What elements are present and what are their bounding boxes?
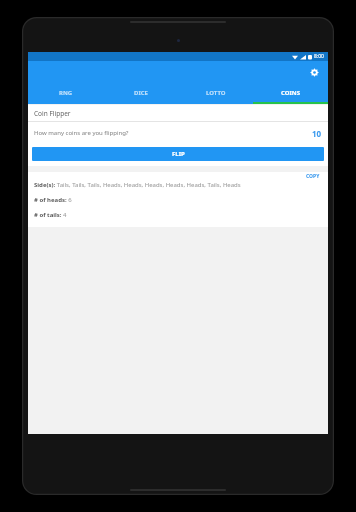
button[interactable]: Settings	[306, 64, 323, 81]
staticText: # of tails: 4	[34, 211, 67, 219]
staticText: Coin Flipper	[34, 109, 71, 118]
button[interactable]: RNG	[28, 84, 103, 102]
staticText: COINS	[281, 89, 300, 97]
staticText: COPY	[306, 173, 320, 180]
staticText: 10	[312, 128, 322, 139]
button[interactable]: DICE	[103, 84, 178, 102]
staticText: FLIP	[172, 150, 185, 158]
button[interactable]: LOTTO	[178, 84, 253, 102]
button[interactable]: COINS	[253, 84, 328, 102]
staticText: Side(s): Tails, Tails, Tails, Heads, Hea…	[34, 181, 241, 189]
staticText: LOTTO	[206, 89, 226, 97]
button[interactable]: How many coins are you flipping?	[28, 122, 328, 144]
button[interactable]: COPY	[304, 172, 322, 181]
staticText: # of heads: 6	[34, 196, 72, 204]
staticText: DICE	[134, 89, 148, 97]
staticText: RNG	[59, 89, 73, 97]
staticText: 8:00	[314, 53, 324, 60]
button[interactable]: FLIP	[32, 147, 324, 161]
staticText: How many coins are you flipping?	[34, 129, 129, 137]
